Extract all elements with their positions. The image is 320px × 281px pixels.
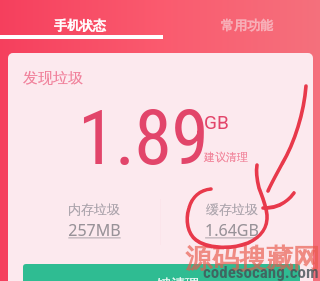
staticText: 建议清理 bbox=[204, 150, 248, 164]
staticText: 缓存垃圾 bbox=[206, 201, 258, 217]
staticText: 内存垃圾 bbox=[68, 201, 120, 217]
staticText: codesocang.com bbox=[203, 262, 319, 281]
staticText: 1.64GB bbox=[205, 219, 259, 241]
staticText: 1.89 bbox=[78, 93, 209, 182]
staticText: 手机状态 bbox=[54, 17, 106, 33]
staticText: GB bbox=[204, 111, 229, 133]
staticText: 源码搜藏网 bbox=[185, 242, 320, 276]
button[interactable]: 内存垃圾 bbox=[24, 201, 164, 241]
button[interactable]: 缓存垃圾 bbox=[162, 201, 302, 241]
button[interactable]: 一键清理 bbox=[23, 264, 300, 281]
staticText: 常用功能 bbox=[221, 17, 273, 33]
staticText: 一键清理 bbox=[143, 276, 199, 281]
button[interactable]: 手机状态 bbox=[0, 0, 160, 39]
staticText: 发现垃圾 bbox=[23, 69, 83, 88]
button[interactable]: 常用功能 bbox=[160, 0, 320, 39]
staticText: 257MB bbox=[68, 219, 121, 241]
